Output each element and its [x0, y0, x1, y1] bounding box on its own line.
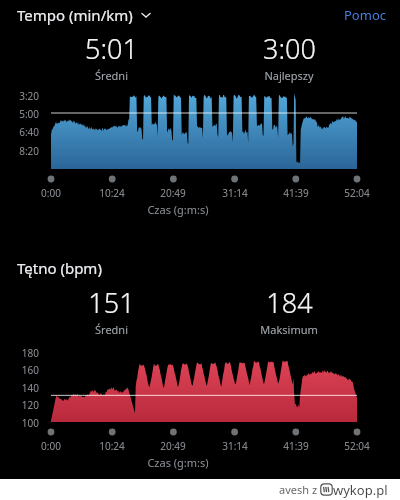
staticText: Pomoc: [344, 6, 386, 24]
staticText: 3:20: [0, 89, 39, 103]
button[interactable]: Tempo (min/km): [17, 5, 152, 25]
staticText: 160: [0, 363, 39, 377]
staticText: 20:49: [148, 439, 198, 453]
staticText: 180: [0, 346, 39, 360]
button[interactable]: 151: [22, 284, 200, 337]
staticText: Czas (g:m:s): [0, 202, 356, 217]
staticText: 151: [88, 284, 135, 321]
staticText: 0:00: [26, 439, 76, 453]
staticText: 10:24: [87, 186, 137, 200]
staticText: 3:00: [263, 30, 316, 67]
staticText: 31:14: [210, 439, 260, 453]
staticText: 6:40: [0, 125, 39, 139]
staticText: 184: [266, 284, 313, 321]
staticText: 8:20: [0, 144, 39, 158]
staticText: 41:39: [271, 439, 321, 453]
staticText: Tętno (bpm): [17, 258, 102, 278]
staticText: Tempo (min/km): [17, 5, 133, 25]
staticText: 100: [0, 416, 39, 430]
staticText: 52:04: [332, 186, 382, 200]
staticText: Czas (g:m:s): [0, 455, 356, 470]
staticText: 41:39: [271, 186, 321, 200]
staticText: 120: [0, 398, 39, 412]
staticText: 20:49: [148, 186, 198, 200]
staticText: avesh z: [279, 482, 320, 497]
button[interactable]: 5:01: [22, 30, 200, 83]
staticText: 140: [0, 381, 39, 395]
staticText: wykop.pl: [333, 481, 388, 499]
button[interactable]: 184: [200, 284, 378, 337]
button[interactable]: Pomoc: [344, 6, 386, 24]
staticText: 0:00: [26, 186, 76, 200]
staticText: 10:24: [87, 439, 137, 453]
staticText: Średni: [95, 322, 128, 337]
button[interactable]: 3:00: [200, 30, 378, 83]
staticText: 52:04: [332, 439, 382, 453]
staticText: 31:14: [210, 186, 260, 200]
staticText: 5:00: [0, 107, 39, 121]
staticText: Średni: [95, 68, 128, 83]
staticText: Maksimum: [260, 322, 318, 337]
staticText: Najlepszy: [264, 68, 314, 83]
staticText: 5:01: [85, 30, 138, 67]
